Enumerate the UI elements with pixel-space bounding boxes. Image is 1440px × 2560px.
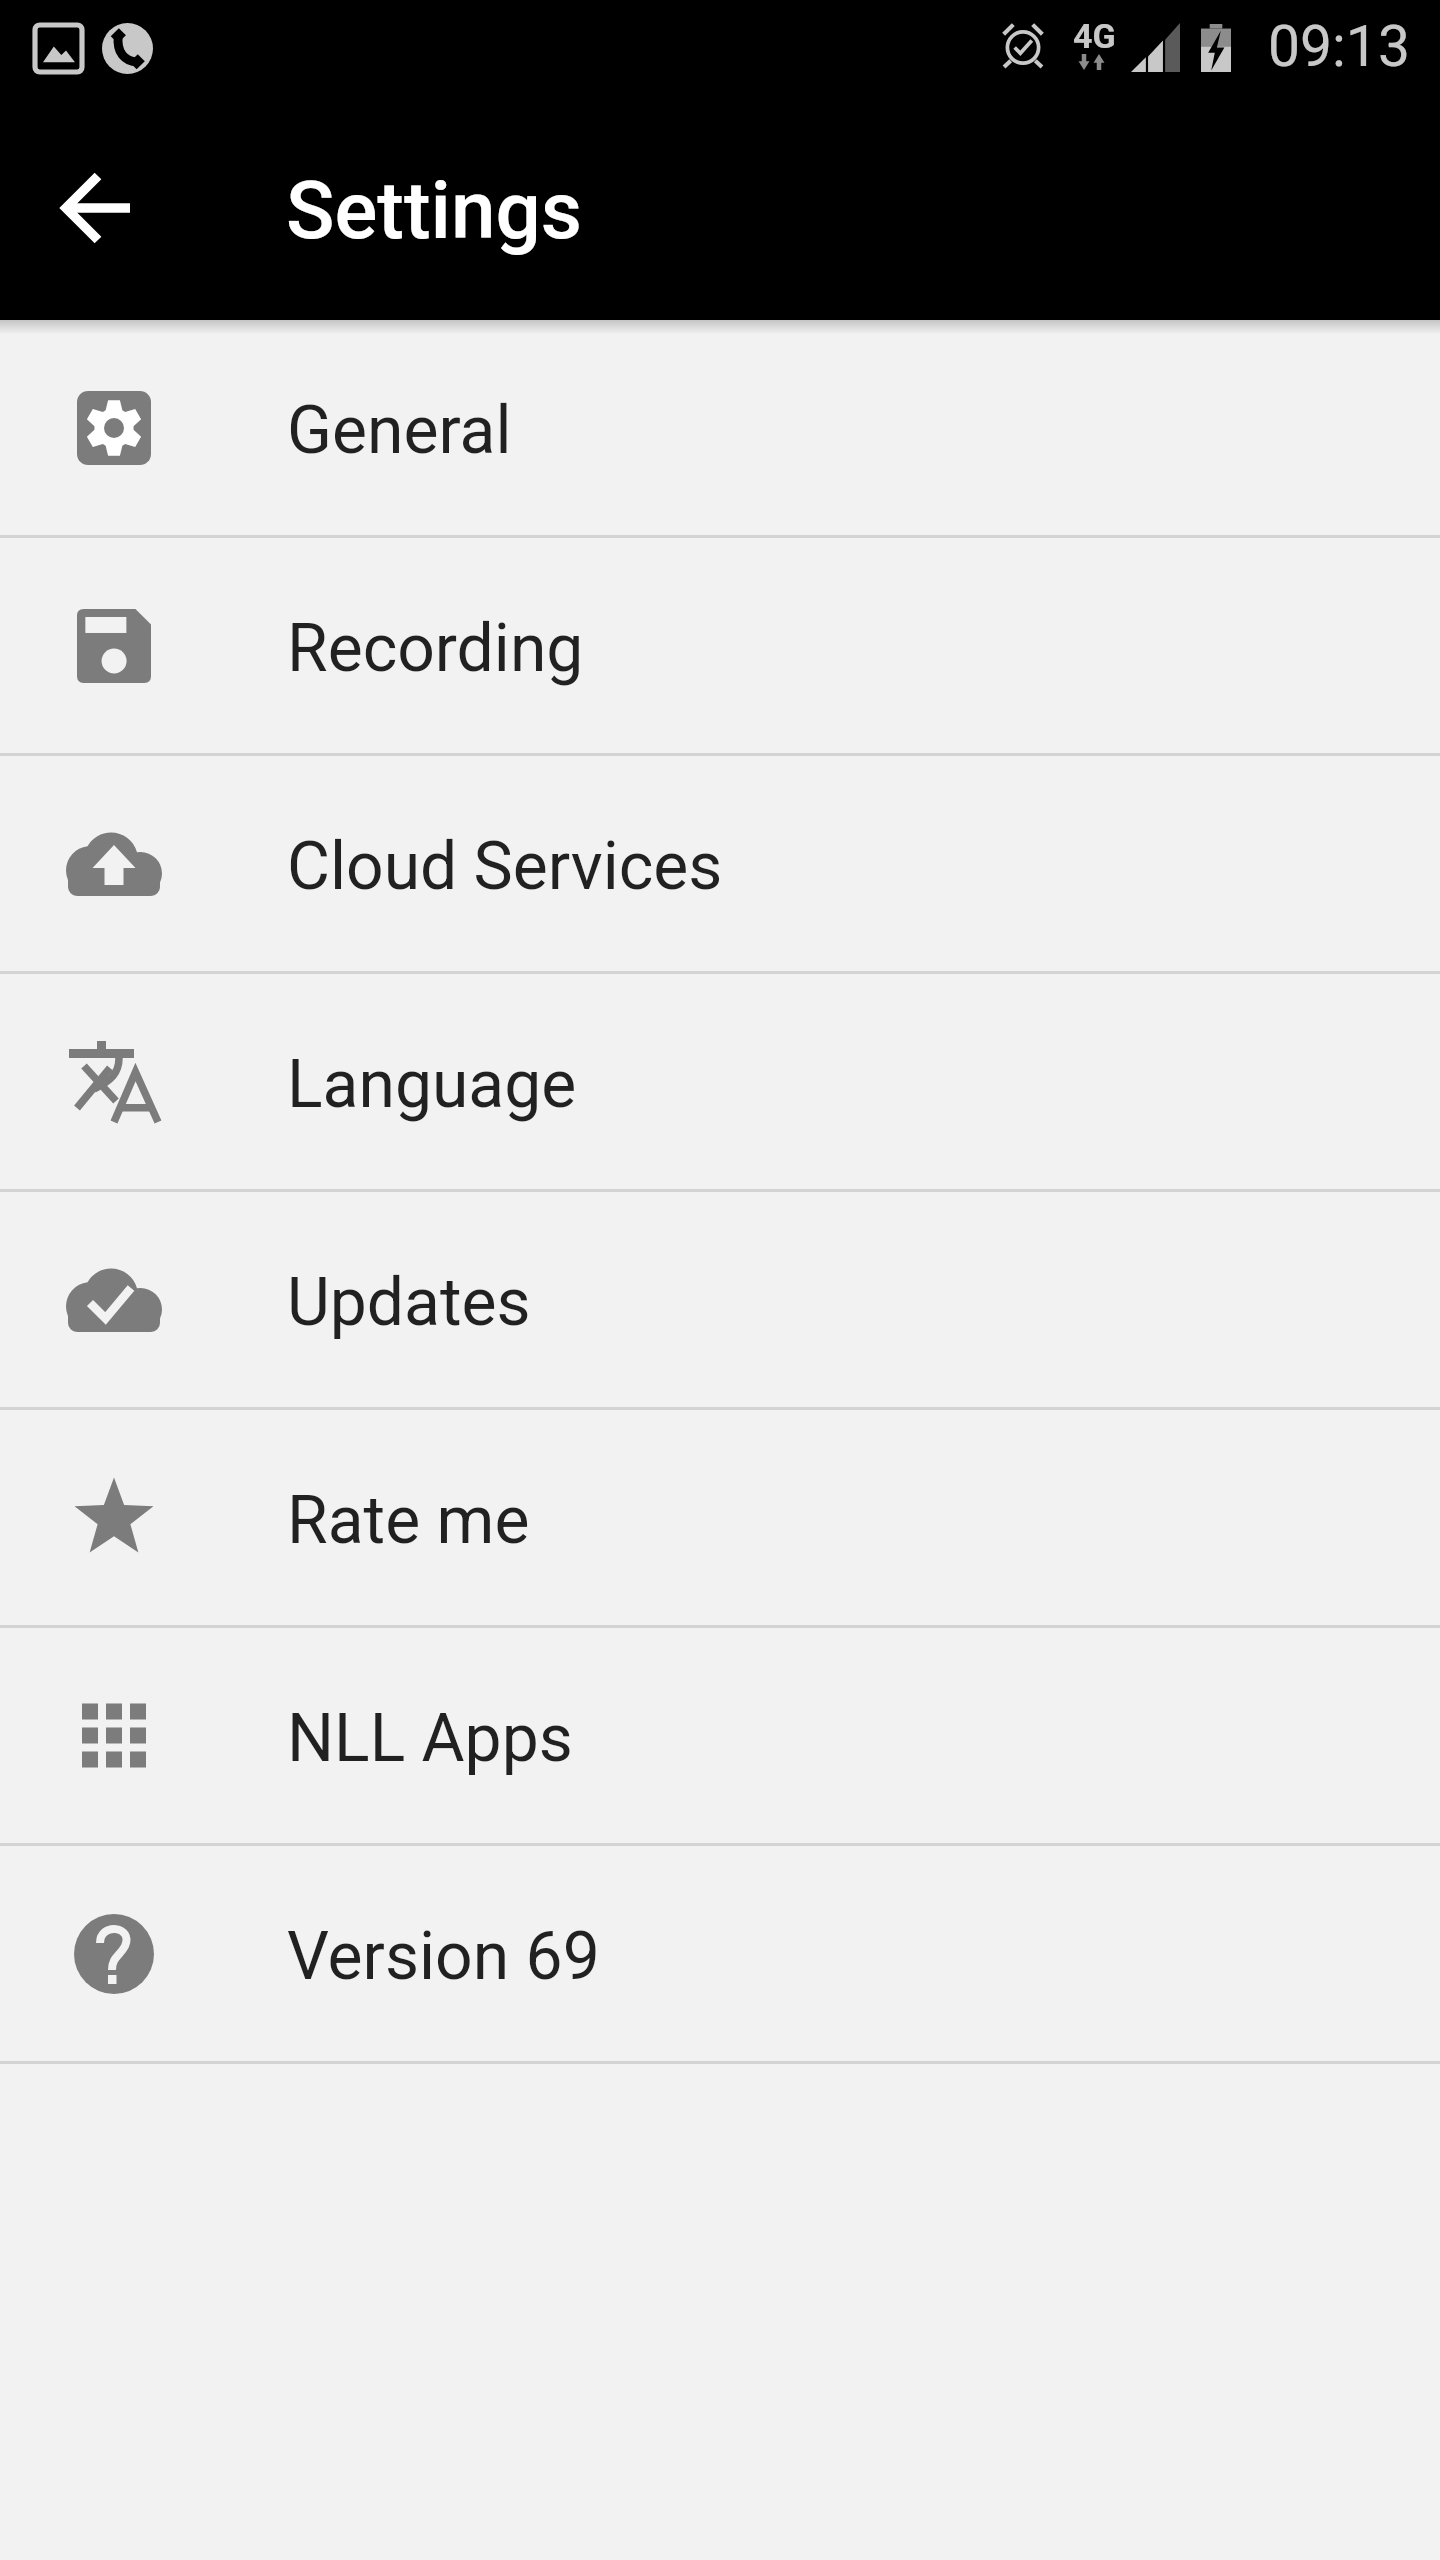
staticText: NLL Apps bbox=[287, 1700, 573, 1777]
button[interactable]: Language bbox=[0, 974, 1440, 1192]
staticText: 4G bbox=[1073, 16, 1116, 56]
button[interactable]: Recording bbox=[0, 538, 1440, 756]
staticText: Version 69 bbox=[287, 1918, 600, 1995]
staticText: 09:13 bbox=[1268, 13, 1410, 80]
button[interactable]: General bbox=[0, 320, 1440, 538]
staticText: Rate me bbox=[287, 1482, 530, 1559]
staticText: Settings bbox=[286, 164, 583, 258]
staticText: Recording bbox=[287, 610, 584, 687]
button[interactable]: Rate me bbox=[0, 1410, 1440, 1628]
staticText: General bbox=[287, 392, 512, 469]
staticText: Updates bbox=[287, 1264, 531, 1341]
button[interactable]: NLL Apps bbox=[0, 1628, 1440, 1846]
button[interactable]: Cloud Services bbox=[0, 756, 1440, 974]
staticText: Language bbox=[287, 1046, 577, 1123]
staticText: Cloud Services bbox=[287, 828, 723, 905]
button[interactable]: Version 69 bbox=[0, 1846, 1440, 2064]
button[interactable]: Back bbox=[0, 96, 192, 320]
button[interactable]: Updates bbox=[0, 1192, 1440, 1410]
